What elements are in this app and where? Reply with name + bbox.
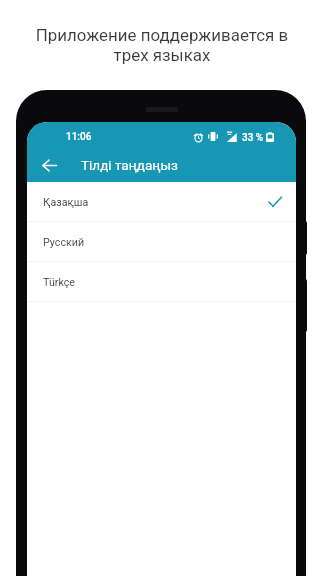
staticText: Қазақша (43, 196, 89, 209)
staticText: 11:06 (66, 131, 92, 143)
button[interactable]: Back (37, 153, 61, 177)
button[interactable]: Русский (27, 222, 296, 261)
staticText: 33 % (242, 132, 264, 144)
staticText: Приложение поддерживается в трех языках (0, 25, 324, 66)
staticText: Русский (43, 236, 85, 249)
staticText: Türkçe (43, 276, 75, 289)
button[interactable]: Қазақша (27, 182, 296, 221)
button[interactable]: Türkçe (27, 262, 296, 301)
staticText: Тілді таңдаңыз (81, 157, 178, 173)
